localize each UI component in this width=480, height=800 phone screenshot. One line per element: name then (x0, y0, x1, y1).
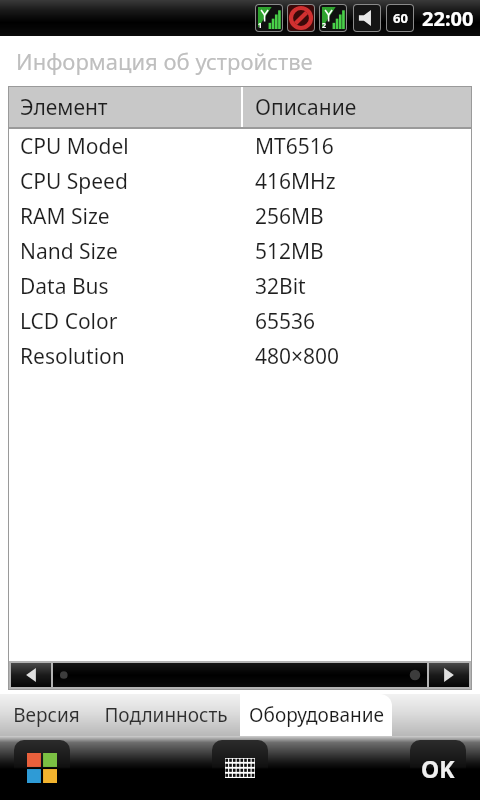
staticText: Информация об устройстве (16, 46, 313, 76)
staticText: 1 (258, 21, 263, 31)
staticText: Версия (13, 702, 80, 728)
staticText: LCD Color (20, 307, 118, 336)
staticText: 512MB (255, 237, 324, 266)
other: Sound (354, 5, 380, 31)
staticText: 65536 (255, 307, 316, 336)
button[interactable]: LCD Color (9, 304, 471, 339)
staticText: 416MHz (255, 167, 336, 196)
staticText: Resolution (20, 342, 125, 371)
staticText: Элемент (20, 93, 108, 122)
staticText: CPU Speed (20, 167, 128, 196)
button[interactable] (53, 663, 427, 687)
button[interactable]: Nand Size (9, 234, 471, 269)
staticText: 32Bit (255, 272, 306, 301)
button[interactable]: CPU Speed (9, 164, 471, 199)
other: Signal 1 (256, 5, 282, 31)
button[interactable]: Описание (243, 87, 471, 127)
staticText: 480×800 (255, 342, 340, 371)
button[interactable]: Подлинность (92, 694, 240, 736)
button[interactable]: OK (410, 740, 466, 796)
button[interactable]: CPU Model (9, 129, 471, 164)
staticText: 60 (393, 9, 408, 27)
staticText: OK (421, 753, 455, 784)
button[interactable]: Keyboard (212, 740, 268, 796)
button[interactable]: Data Bus (9, 269, 471, 304)
button[interactable]: Оборудование (240, 694, 392, 736)
staticText: CPU Model (20, 132, 129, 161)
button[interactable]: Start (14, 740, 70, 796)
staticText: 256MB (255, 202, 324, 231)
other: Signal 2 (320, 5, 346, 31)
staticText: Подлинность (104, 702, 228, 728)
other: Battery (387, 5, 413, 31)
staticText: Оборудование (249, 702, 384, 728)
staticText: MT6516 (255, 132, 334, 161)
button[interactable]: Версия (0, 694, 92, 736)
staticText: Nand Size (20, 237, 118, 266)
staticText: 2 (322, 21, 327, 31)
staticText: Описание (255, 93, 357, 122)
button[interactable]: Элемент (9, 87, 241, 127)
staticText: 22:00 (422, 5, 474, 32)
button[interactable]: Resolution (9, 339, 471, 374)
button[interactable]: Scroll left (11, 663, 51, 687)
button[interactable]: RAM Size (9, 199, 471, 234)
staticText: Data Bus (20, 272, 109, 301)
staticText: RAM Size (20, 202, 110, 231)
button[interactable]: Scroll right (429, 663, 469, 687)
other: No connection (288, 5, 314, 31)
